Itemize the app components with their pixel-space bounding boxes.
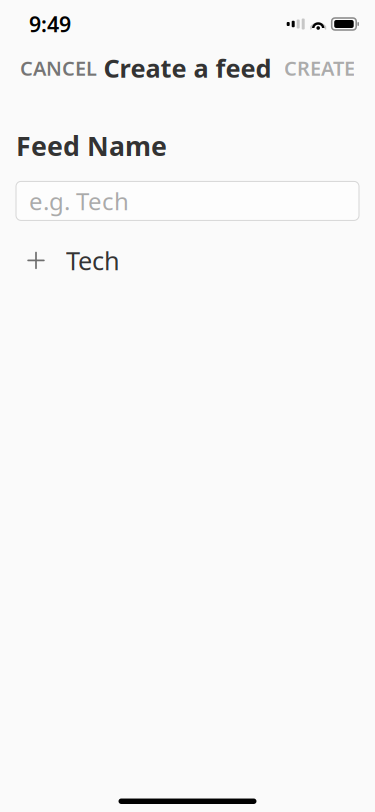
staticText: CREATE [284, 55, 355, 81]
staticText: Create a feed [103, 51, 271, 85]
button[interactable]: e.g. Tech [16, 181, 359, 220]
button[interactable]: Tech [16, 240, 359, 280]
staticText: e.g. Tech [29, 185, 129, 217]
staticText: CANCEL [20, 55, 97, 81]
button[interactable]: CREATE [264, 45, 375, 91]
staticText: 9:49 [29, 10, 71, 38]
staticText: Tech [66, 244, 120, 277]
staticText: Feed Name [16, 128, 167, 163]
button[interactable]: CANCEL [0, 45, 117, 91]
